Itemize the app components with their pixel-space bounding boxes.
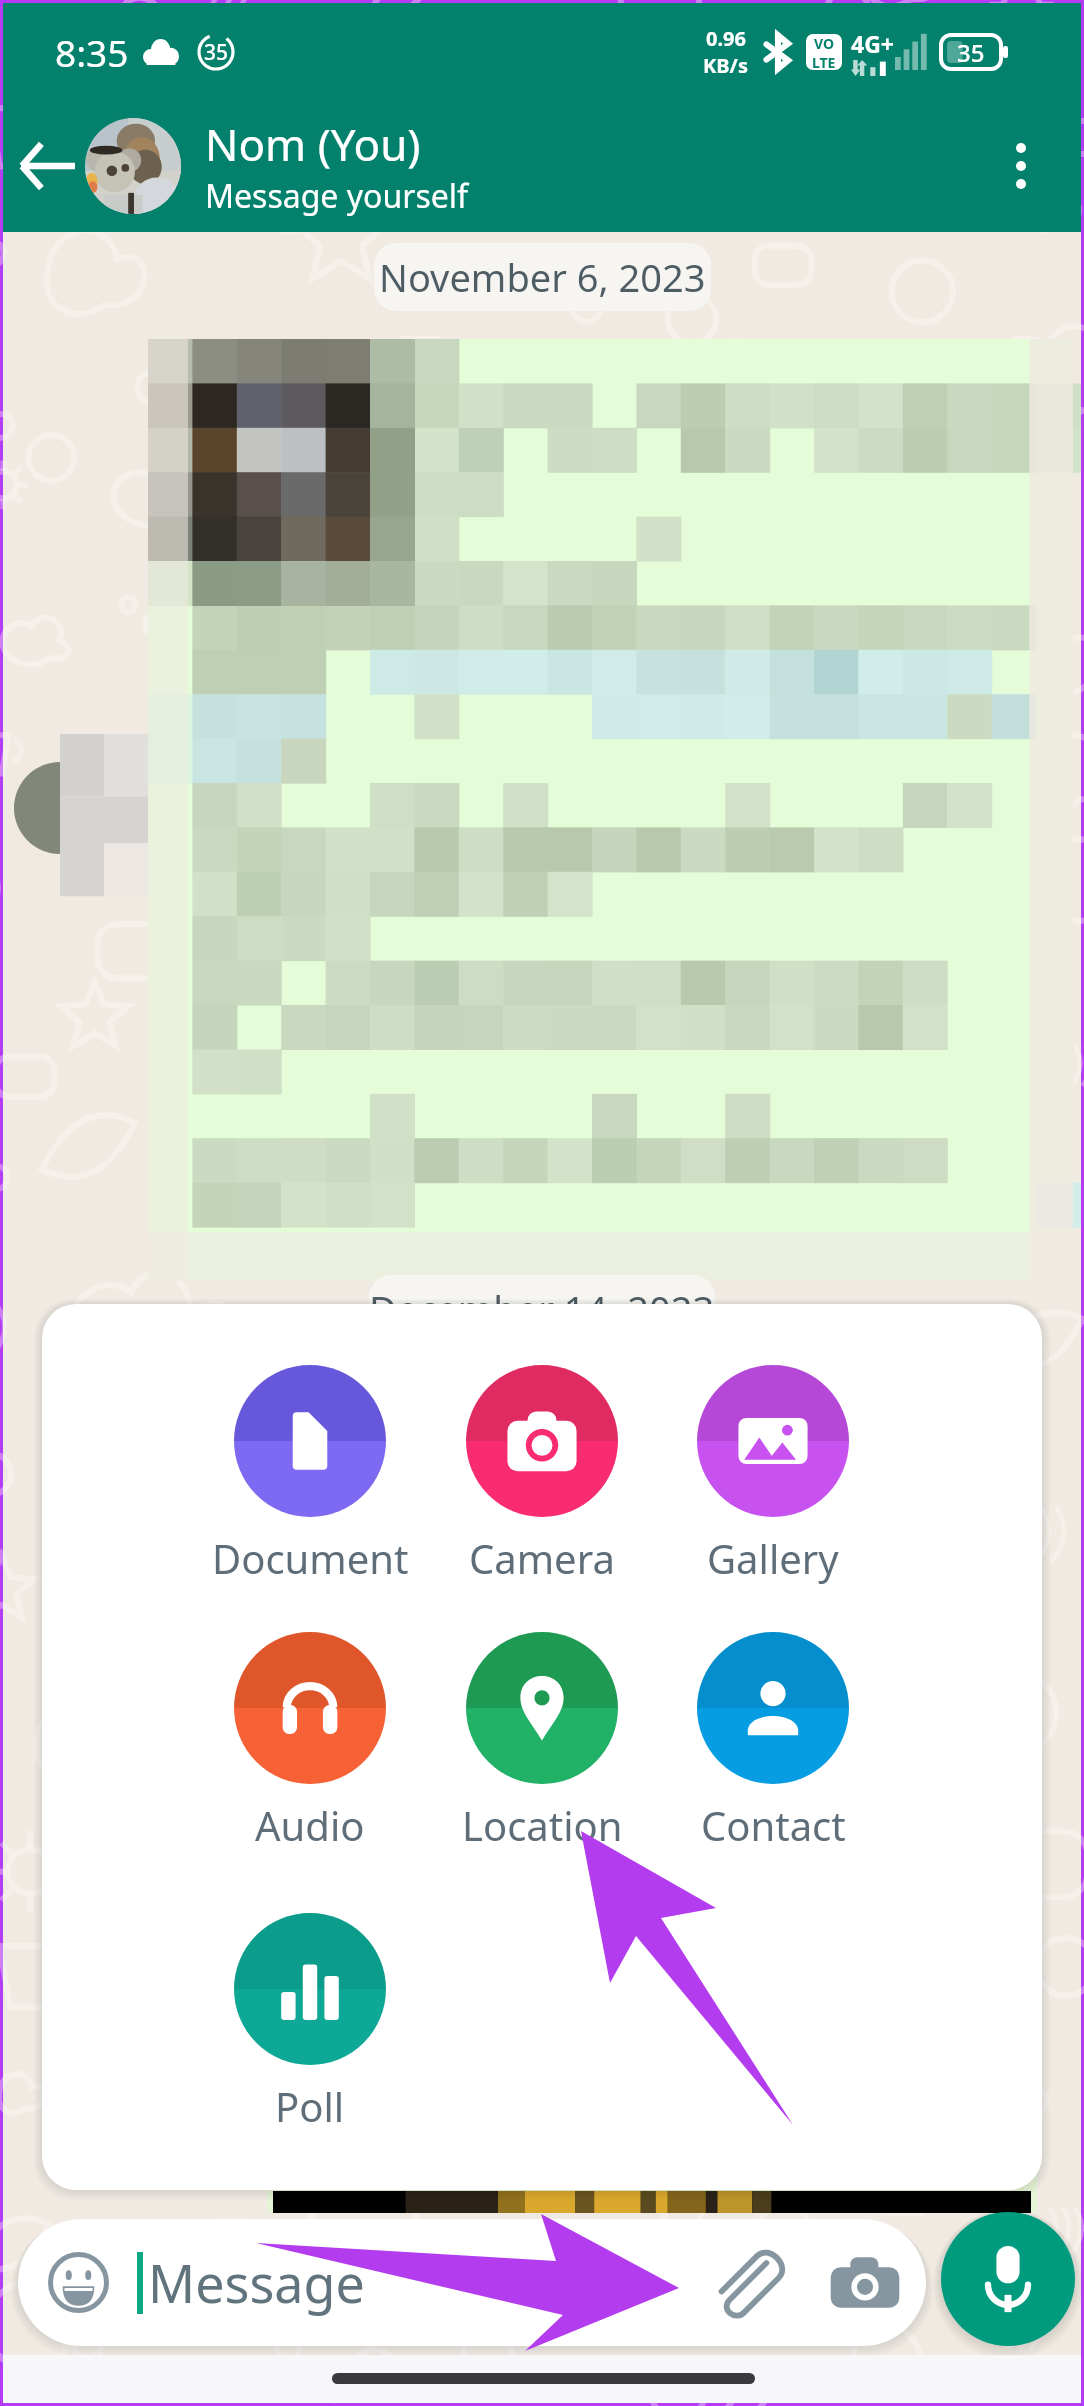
button[interactable]: More options [977,122,1065,210]
staticText: Poll [275,2079,345,2133]
button[interactable]: Location [432,1632,652,1852]
button[interactable]: Poll [200,1913,420,2133]
button[interactable]: Audio [200,1632,420,1852]
button[interactable]: Back [9,128,85,204]
staticText: Nom (You) [205,114,421,174]
staticText: Audio [255,1798,365,1852]
button[interactable]: Camera [432,1365,652,1585]
staticText: Message [148,2247,365,2318]
staticText: VO [814,34,835,53]
staticText: Contact [701,1798,846,1852]
staticText: LTE [812,53,836,70]
staticText: Gallery [707,1531,839,1585]
staticText: Message yourself [205,174,469,218]
staticText: 0.96 [706,25,746,52]
staticText: Location [462,1798,623,1852]
button[interactable]: Contact [663,1632,883,1852]
staticText: 8:35 [55,27,129,77]
button[interactable]: Emoji [18,2219,926,2346]
staticText: December 14, 2023 [369,1283,715,1335]
button[interactable]: Emoji [48,2252,109,2313]
staticText: Document [212,1531,409,1585]
staticText: November 6, 2023 [379,251,706,303]
staticText: 35 [204,38,229,67]
button[interactable]: Attach [712,2248,780,2316]
button[interactable]: Document [200,1365,420,1585]
button[interactable]: Nom (You) [205,114,977,218]
staticText: 35 [957,36,985,69]
staticText: 4G+ [851,28,894,59]
button[interactable]: Voice message [941,2212,1075,2346]
button[interactable]: Camera [830,2255,900,2311]
button[interactable]: Gallery [663,1365,883,1585]
staticText: Camera [469,1531,615,1585]
staticText: KB/s [703,52,748,79]
button[interactable]: Profile photo [85,118,181,214]
